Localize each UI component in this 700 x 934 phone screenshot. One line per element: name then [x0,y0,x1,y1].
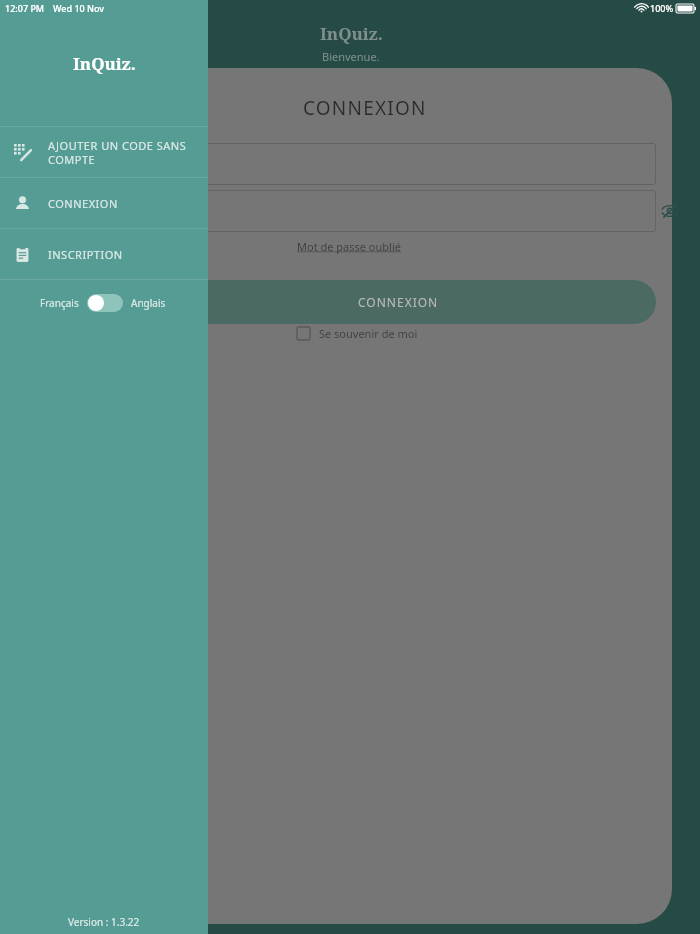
staticText: Bienvenue. [322,49,380,64]
button[interactable]: Afficher le mot de passe [656,197,684,225]
staticText: CONNEXION [303,95,427,121]
staticText: CONNEXION [358,294,439,310]
button[interactable] [87,294,123,312]
staticText: InQuiz. [73,52,136,75]
staticText: Version : 1.3.22 [68,915,140,929]
staticText: Wed 10 Nov [53,2,105,14]
button[interactable]: Mot de passe oublié [297,239,401,254]
staticText: 100% [650,2,674,14]
staticText: Mot de passe oublié [297,239,401,254]
staticText: InQuiz. [320,22,383,45]
staticText: Français [40,296,79,310]
staticText: AJOUTER UN CODE SANS COMPTE [48,138,187,167]
staticText: Anglais [131,296,166,310]
staticText: 12:07 PM [5,2,45,14]
button[interactable]: AJOUTER UN CODE SANS COMPTE [0,127,208,177]
button[interactable]: Se souvenir de moi [296,326,418,341]
staticText: Se souvenir de moi [319,326,418,341]
button[interactable]: INSCRIPTION [0,229,208,279]
button[interactable] [140,143,656,185]
staticText: INSCRIPTION [48,247,123,262]
button[interactable] [140,190,656,232]
staticText: CONNEXION [48,196,118,211]
button[interactable]: CONNEXION [0,178,208,228]
button[interactable]: CONNEXION [140,280,656,324]
